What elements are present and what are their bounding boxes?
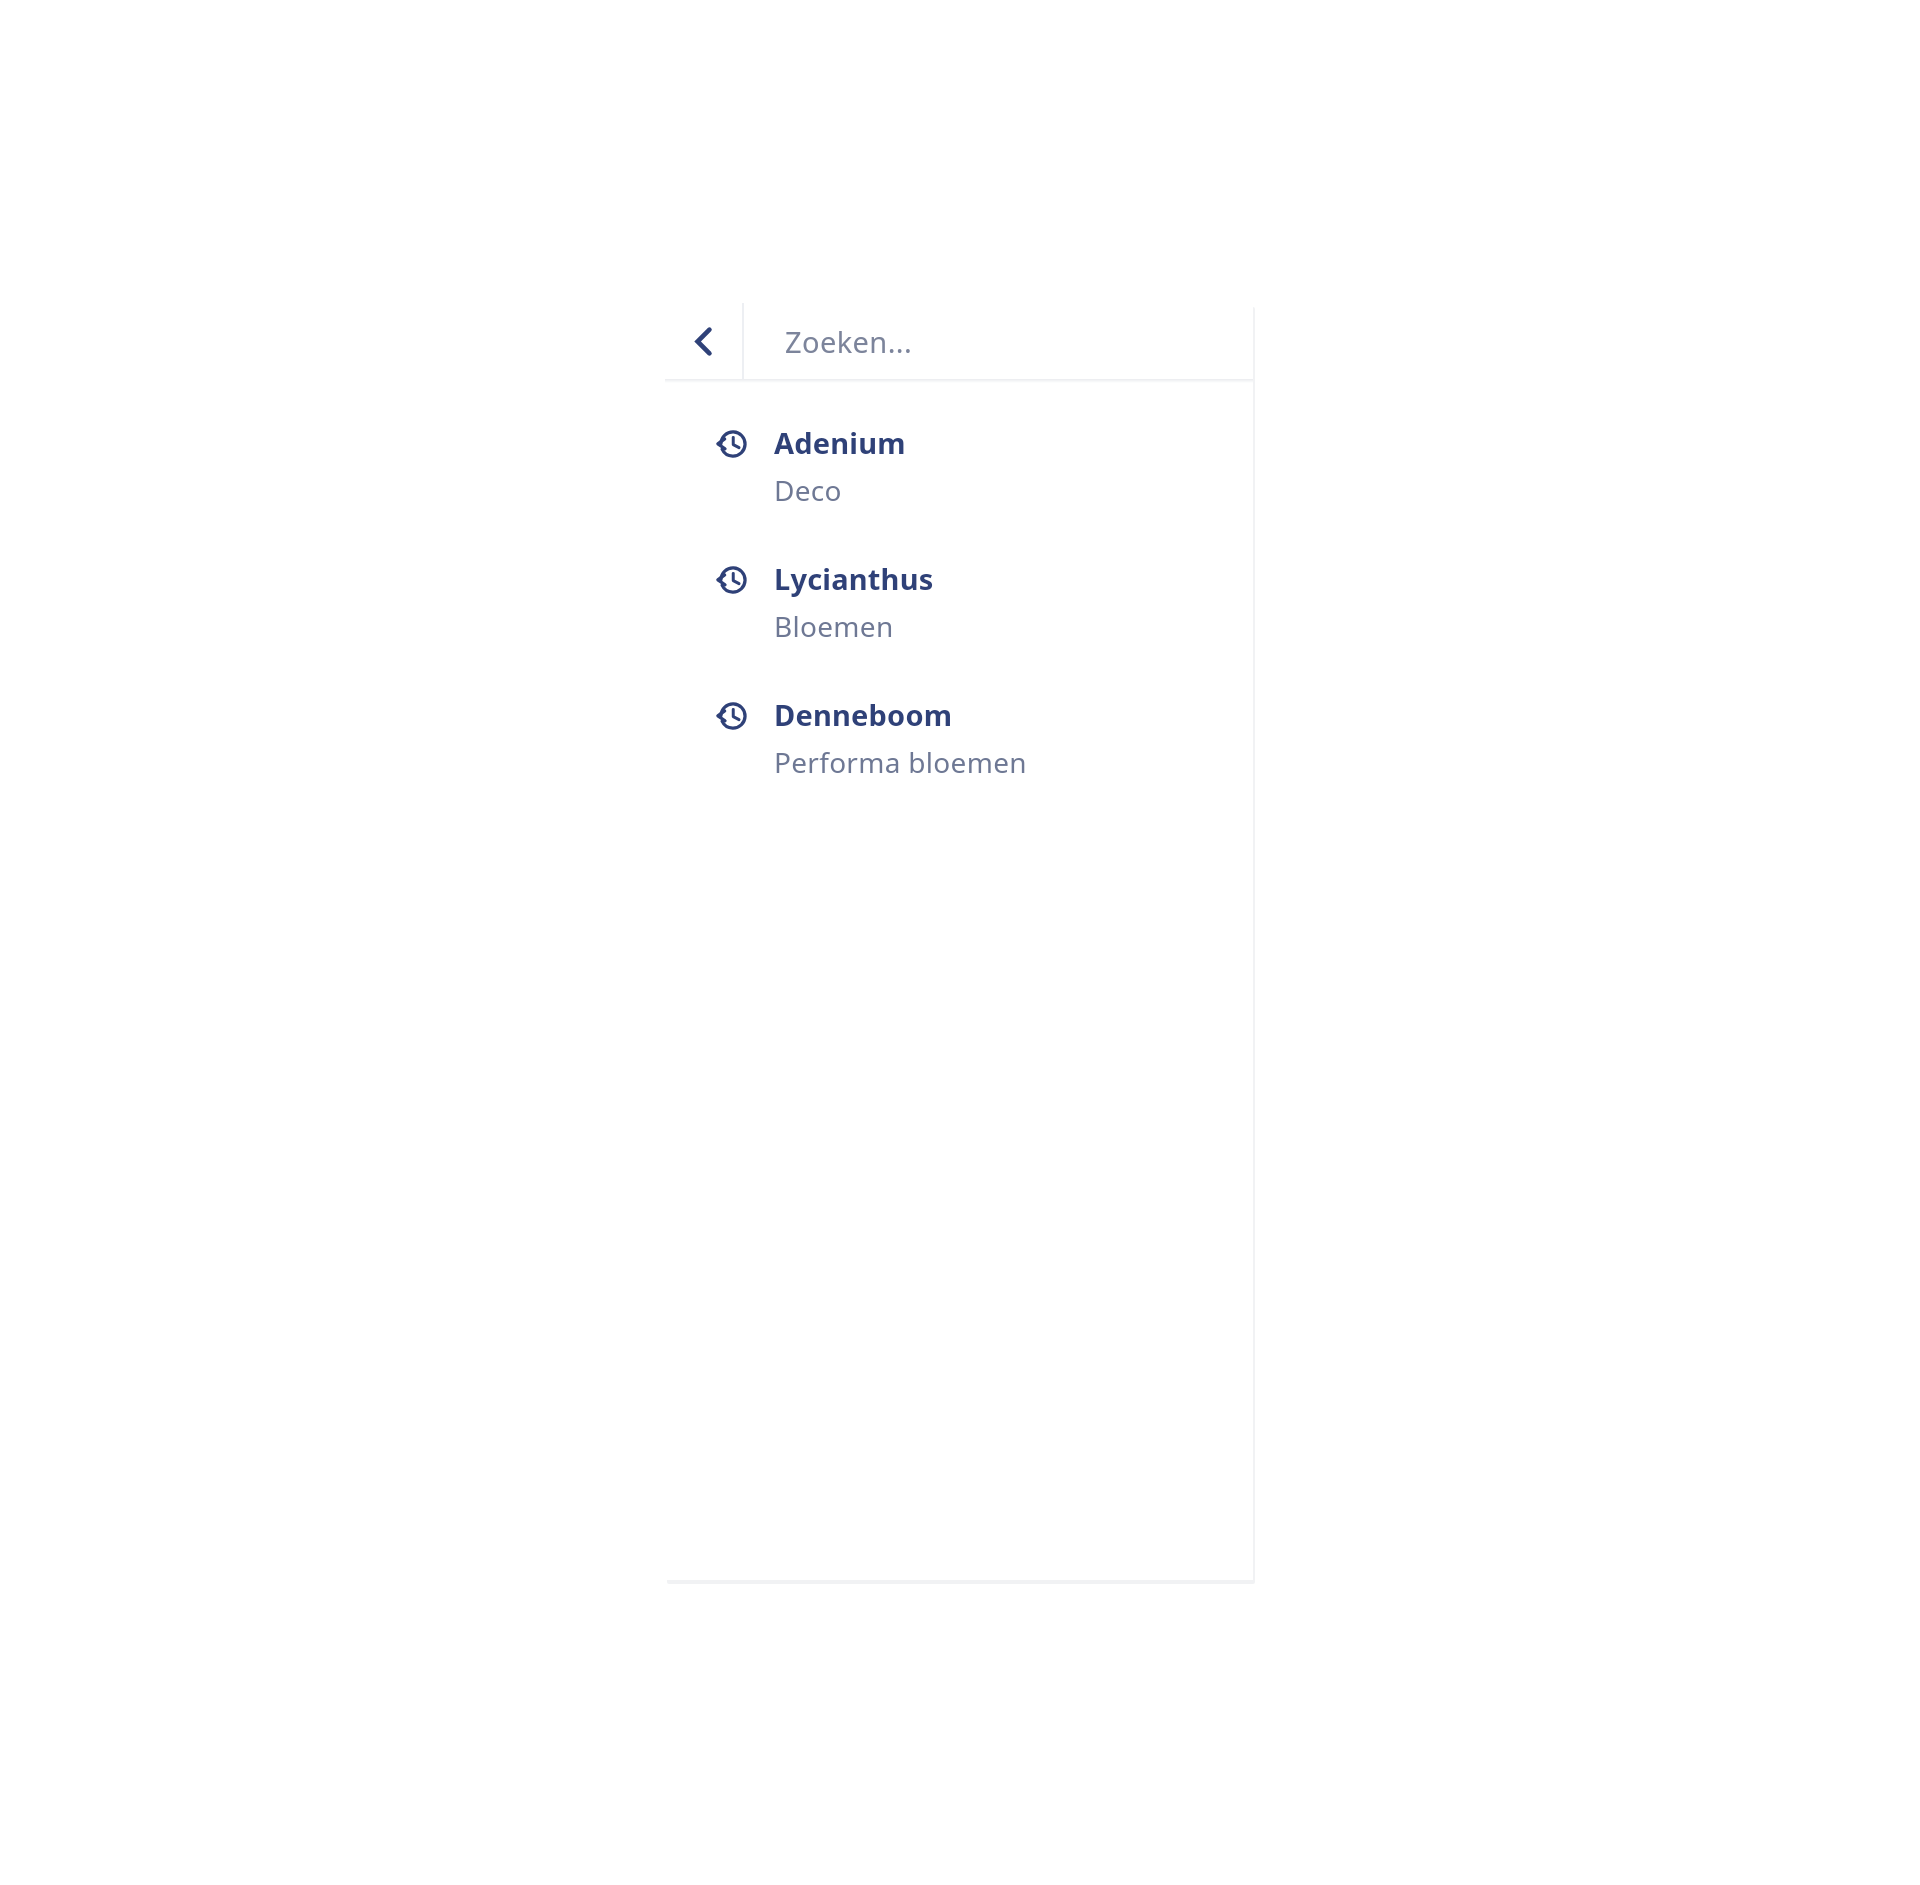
- button[interactable]: Denneboom: [665, 685, 1253, 791]
- button[interactable]: Zoeken...: [744, 303, 1253, 379]
- button[interactable]: Lycianthus: [665, 549, 1253, 655]
- button[interactable]: Back: [665, 303, 742, 379]
- staticText: Denneboom: [774, 695, 953, 734]
- button[interactable]: Adenium: [665, 413, 1253, 519]
- staticText: Lycianthus: [774, 559, 934, 598]
- staticText: Deco: [774, 471, 842, 509]
- staticText: Bloemen: [774, 607, 894, 645]
- staticText: Performa bloemen: [774, 743, 1027, 781]
- staticText: Zoeken...: [785, 322, 913, 361]
- staticText: Adenium: [774, 423, 906, 462]
